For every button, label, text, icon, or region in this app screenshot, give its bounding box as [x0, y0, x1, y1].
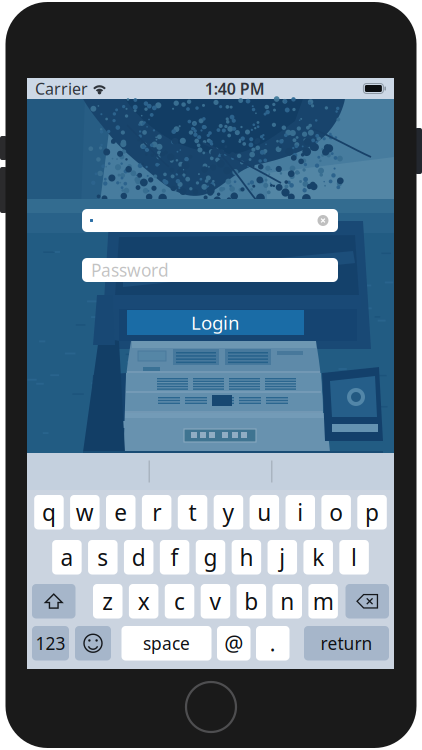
button[interactable]: b — [237, 584, 266, 618]
staticText: m — [313, 586, 334, 616]
button[interactable]: k — [303, 540, 333, 574]
button[interactable]: y — [214, 495, 243, 529]
staticText: p — [365, 497, 379, 527]
button[interactable]: Clear text — [316, 213, 330, 227]
button[interactable]: @ — [217, 626, 250, 660]
button[interactable]: r — [142, 495, 171, 529]
staticText: @ — [224, 629, 243, 657]
staticText: q — [42, 497, 56, 527]
staticText: space — [143, 632, 190, 655]
staticText: Login — [191, 310, 240, 335]
staticText: b — [244, 586, 258, 616]
staticText: Password — [91, 258, 169, 281]
staticText: d — [132, 542, 146, 572]
button[interactable]: 123 — [32, 626, 69, 660]
button[interactable]: a — [52, 540, 82, 574]
button[interactable]: z — [93, 584, 122, 618]
staticText: . — [270, 629, 276, 657]
staticText: x — [138, 586, 150, 616]
staticText: Carrier — [35, 78, 88, 99]
button[interactable]: i — [285, 495, 315, 529]
button[interactable]: f — [160, 540, 189, 574]
button[interactable]: g — [196, 540, 225, 574]
staticText: i — [297, 497, 303, 527]
staticText: z — [102, 586, 113, 616]
staticText: g — [203, 542, 217, 572]
staticText: f — [171, 542, 179, 572]
button[interactable]: o — [321, 495, 351, 529]
button[interactable]: j — [268, 540, 297, 574]
staticText: 1:40 PM — [205, 78, 265, 99]
staticText: j — [279, 542, 285, 572]
button[interactable]: m — [308, 584, 338, 618]
button[interactable]: Shift — [32, 584, 75, 618]
button[interactable]: x — [129, 584, 158, 618]
button[interactable]: t — [178, 495, 207, 529]
staticText: s — [97, 542, 108, 572]
button[interactable]: l — [339, 540, 369, 574]
button[interactable]: q — [34, 495, 64, 529]
button[interactable]: Backspace — [345, 584, 389, 618]
staticText: return — [320, 632, 372, 655]
button[interactable]: Login — [127, 310, 304, 335]
staticText: 123 — [35, 632, 65, 655]
staticText: c — [174, 586, 185, 616]
button[interactable]: space — [121, 626, 211, 660]
button[interactable]: n — [272, 584, 302, 618]
staticText: r — [152, 497, 161, 527]
staticText: o — [329, 497, 343, 527]
staticText: u — [257, 497, 271, 527]
staticText: t — [188, 497, 196, 527]
button[interactable]: return — [304, 626, 389, 660]
staticText: y — [222, 497, 234, 527]
button[interactable]: w — [70, 495, 100, 529]
staticText: w — [76, 497, 94, 527]
button[interactable]: c — [165, 584, 194, 618]
staticText: l — [351, 542, 357, 572]
staticText: v — [209, 586, 221, 616]
button[interactable]: e — [106, 495, 135, 529]
button[interactable]: Emoji — [75, 626, 111, 660]
button[interactable]: . — [256, 626, 289, 660]
staticText: e — [114, 497, 127, 527]
button[interactable]: h — [232, 540, 261, 574]
button[interactable]: d — [124, 540, 153, 574]
button[interactable]: p — [357, 495, 387, 529]
staticText: h — [239, 542, 253, 572]
staticText: n — [280, 586, 294, 616]
button[interactable]: v — [201, 584, 230, 618]
staticText: a — [60, 542, 73, 572]
button[interactable]: s — [88, 540, 118, 574]
button[interactable]: u — [250, 495, 279, 529]
staticText: k — [312, 542, 324, 572]
